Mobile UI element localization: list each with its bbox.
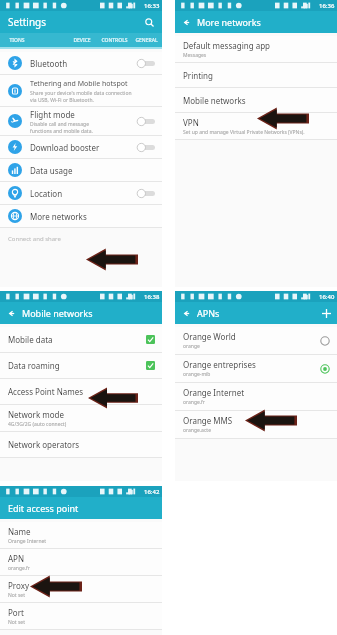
staticText: Port [8,607,24,618]
staticText: APNs [197,307,220,319]
staticText: orange [183,343,200,350]
staticText: Access Point Names [8,386,84,397]
button[interactable]: Printing [175,63,337,88]
staticText: Mobile networks [22,307,93,319]
button[interactable]: Download booster [0,136,162,159]
staticText: 16:40 [319,293,335,301]
staticText: Download booster [30,142,100,153]
button[interactable]: Flight mode [0,107,162,136]
staticText: orange-mib [183,371,211,378]
button[interactable]: GENERAL [130,33,162,47]
button[interactable]: Search [142,15,156,29]
staticText: Settings [8,15,47,29]
staticText: Edit access point [8,502,79,514]
staticText: Orange World [183,331,236,342]
staticText: Disable call and message functions and m… [30,121,93,134]
button[interactable]: Orange entreprises [175,355,337,383]
staticText: 16:36 [319,2,335,10]
staticText: 4G/3G/2G (auto connect) [8,421,67,428]
staticText: Data roaming [8,360,60,371]
staticText: orange.fr [8,565,30,572]
button[interactable]: Mobile data [0,327,162,353]
button[interactable]: Name [0,522,162,549]
staticText: Name [8,526,31,537]
button[interactable]: TIONS [0,33,33,47]
button[interactable]: Back [0,302,22,324]
button[interactable]: Location [0,182,162,205]
staticText: Network mode [8,409,65,420]
staticText: Set up and manage Virtual Private Networ… [183,129,305,136]
staticText: Messages [183,52,207,59]
button[interactable]: Default messaging app [175,36,337,63]
staticText: Orange Internet [8,538,47,545]
button[interactable]: VPN [175,113,337,140]
staticText: Default messaging app [183,40,270,51]
staticText: 16:38 [144,293,160,301]
staticText: 16:42 [144,488,160,496]
staticText: Network operators [8,439,80,450]
staticText: CONTROLS [101,37,128,44]
staticText: Data usage [30,165,73,176]
staticText: GENERAL [135,37,158,44]
button[interactable]: APN [0,549,162,576]
button[interactable]: Add [315,302,337,324]
staticText: Connect and share [8,235,61,243]
button[interactable]: Back [175,11,197,33]
staticText: Tethering and Mobile hotspot [30,79,128,89]
staticText: VPN [183,117,199,128]
staticText: orange.acte [183,427,211,434]
button[interactable]: Orange World [175,327,337,355]
button[interactable]: Network operators [0,432,162,458]
staticText: TIONS [9,37,25,44]
button[interactable]: Orange MMS [175,411,337,439]
staticText: More networks [30,211,87,222]
button[interactable]: Bluetooth [0,52,162,75]
button[interactable]: Access Point Names [0,379,162,405]
button[interactable]: DEVICE [66,33,98,47]
staticText: Printing [183,70,213,81]
button[interactable]: Port [0,603,162,630]
staticText: APN [8,553,25,564]
button[interactable]: Proxy [0,576,162,603]
staticText: Bluetooth [30,58,68,69]
button[interactable]: Mobile networks [175,88,337,113]
button[interactable]: Orange Internet [175,383,337,411]
staticText: Orange entreprises [183,359,256,370]
staticText: Mobile data [8,334,53,345]
button[interactable]: Data roaming [0,353,162,379]
staticText: Not set [8,619,25,626]
staticText: 16:33 [144,2,160,10]
staticText: Orange Internet [183,387,245,398]
button[interactable]: CONTROLS [98,33,130,47]
staticText: Mobile networks [183,95,246,106]
staticText: Not set [8,592,25,599]
button[interactable]: Network mode [0,405,162,432]
button[interactable]: Back [175,302,197,324]
staticText: Orange MMS [183,415,233,426]
staticText: Location [30,188,63,199]
button[interactable]: Data usage [0,159,162,182]
button[interactable]: Tethering and Mobile hotspot [0,75,162,107]
staticText: Share your device's mobile data connecti… [30,90,132,103]
button[interactable]: More networks [0,205,162,228]
staticText: DEVICE [73,37,91,44]
staticText: Proxy [8,580,29,591]
staticText: More networks [197,16,261,28]
staticText: Flight mode [30,109,75,120]
staticText: orange.fr [183,399,205,406]
